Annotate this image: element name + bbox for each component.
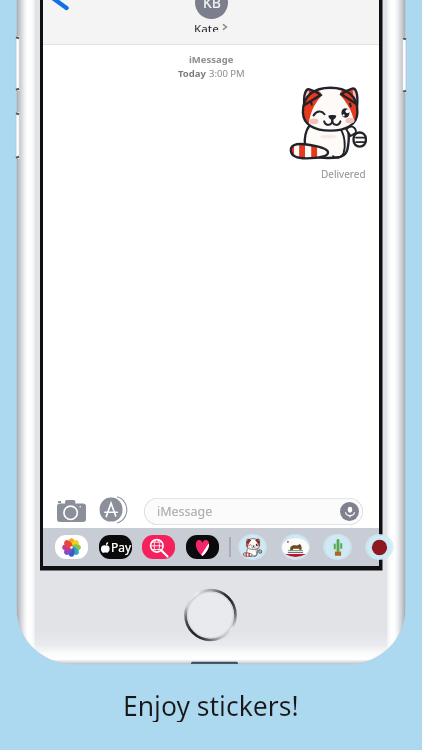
button[interactable]: California stickers	[279, 534, 312, 560]
button[interactable]: Back	[47, 0, 77, 14]
staticText: iMessage	[157, 503, 213, 520]
button[interactable]: KB	[195, 0, 228, 19]
staticText: iMessage	[189, 53, 234, 66]
button[interactable]: iMessage	[144, 498, 363, 525]
staticText: Kate	[194, 21, 219, 32]
staticText: Delivered	[321, 167, 366, 181]
staticText: Pay	[111, 539, 132, 555]
button[interactable]: Dictate	[340, 502, 359, 521]
button[interactable]: Digital Touch	[186, 535, 219, 559]
button[interactable]: More stickers	[363, 534, 396, 560]
button[interactable]: Camera	[55, 494, 88, 527]
staticText: 3:00 PM	[209, 67, 245, 80]
staticText: Enjoy stickers!	[123, 688, 299, 722]
button[interactable]: Photos	[55, 535, 88, 559]
staticText: Today	[178, 67, 209, 80]
staticText: KB	[203, 0, 221, 12]
button[interactable]: Images	[142, 535, 175, 559]
button[interactable]: App Store	[97, 494, 129, 526]
button[interactable]: Cat stickers	[236, 534, 269, 560]
button[interactable]: Apple Pay	[99, 535, 132, 559]
button[interactable]: Cactus stickers	[321, 534, 354, 560]
button[interactable]: Kate	[194, 21, 229, 32]
